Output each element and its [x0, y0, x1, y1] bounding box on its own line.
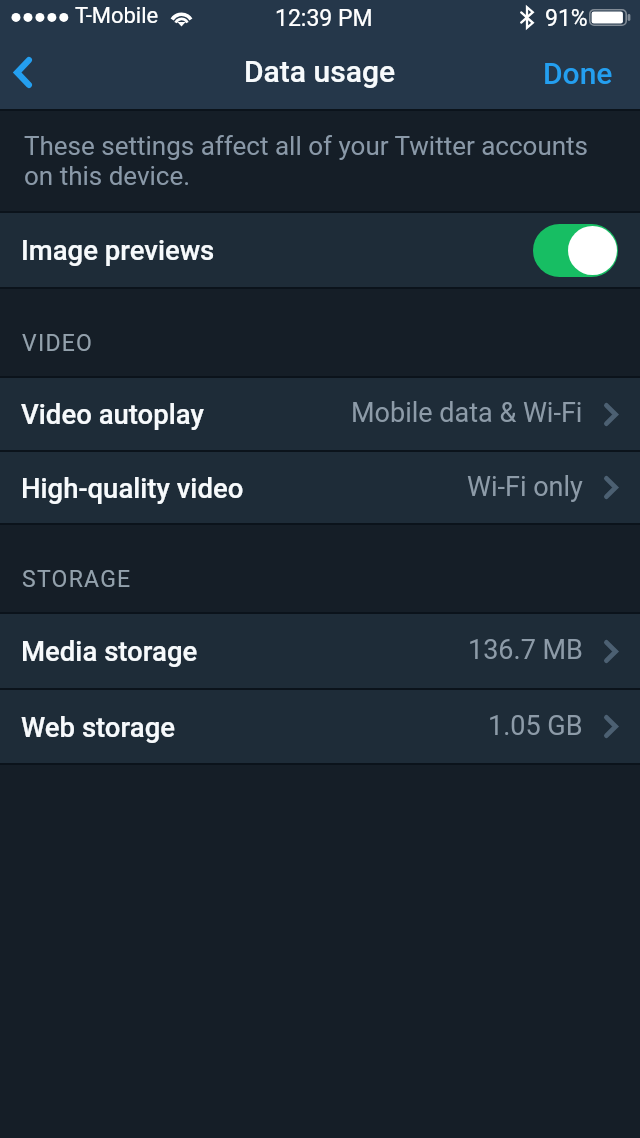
staticText: 91%: [545, 5, 588, 32]
staticText: Media storage: [21, 635, 198, 667]
button[interactable]: Media storage: [0, 614, 640, 688]
staticText: 12:39 PM: [275, 5, 373, 32]
button[interactable]: Done: [523, 40, 640, 109]
button[interactable]: High-quality video: [0, 452, 640, 523]
button[interactable]: Video autoplay: [0, 378, 640, 450]
staticText: 1.05 GB: [488, 710, 583, 742]
button[interactable]: Web storage: [0, 690, 640, 763]
staticText: Video autoplay: [21, 398, 204, 430]
staticText: Data usage: [244, 54, 396, 89]
staticText: Done: [543, 56, 613, 91]
staticText: VIDEO: [22, 330, 94, 357]
staticText: Image previews: [21, 234, 215, 266]
staticText: STORAGE: [22, 566, 132, 593]
staticText: Mobile data & Wi-Fi: [351, 397, 583, 429]
staticText: High-quality video: [21, 472, 244, 504]
button[interactable]: Image previews: [0, 213, 640, 287]
staticText: These settings affect all of your Twitte…: [24, 131, 620, 191]
staticText: 136.7 MB: [468, 634, 583, 666]
staticText: Wi-Fi only: [467, 471, 583, 503]
staticText: Web storage: [21, 711, 176, 743]
staticText: T-Mobile: [75, 3, 159, 29]
button[interactable]: Back: [0, 40, 45, 104]
other: Image previews toggle: [533, 224, 618, 277]
